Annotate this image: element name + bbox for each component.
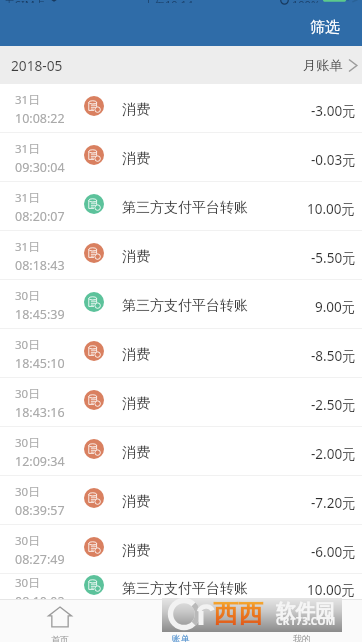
button[interactable]: 30日 <box>0 280 362 329</box>
staticText: 筛选 <box>310 18 340 37</box>
button[interactable]: Profile <box>241 599 362 642</box>
staticText: -6.00元 <box>311 543 356 561</box>
staticText: 10.00元 <box>307 581 356 599</box>
staticText: 31日 <box>15 190 40 206</box>
staticText: 消费 <box>122 395 150 413</box>
staticText: 30日 <box>15 386 40 402</box>
staticText: 30日 <box>15 435 40 451</box>
button[interactable]: 30日 <box>0 574 362 599</box>
staticText: 30日 <box>15 337 40 353</box>
staticText: 18:45:39 <box>15 306 65 323</box>
staticText: 消费 <box>122 346 150 364</box>
staticText: 31日 <box>15 141 40 157</box>
staticText: 西西 <box>213 598 263 629</box>
staticText: 上午10:14 <box>143 0 194 3</box>
staticText: 100% <box>292 0 321 3</box>
staticText: 我的 <box>293 633 311 642</box>
staticText: CR173.COM <box>276 614 336 628</box>
staticText: 30日 <box>15 575 40 591</box>
button[interactable]: 30日 <box>0 476 362 525</box>
staticText: 08:20:07 <box>15 208 65 225</box>
staticText: 31日 <box>15 239 40 255</box>
staticText: 08:27:49 <box>15 551 65 568</box>
button[interactable]: 2018-05 <box>0 46 362 84</box>
staticText: 18:45:10 <box>15 355 65 372</box>
staticText: 消费 <box>122 493 150 511</box>
staticText: 12:09:34 <box>15 453 65 470</box>
staticText: 9.00元 <box>315 298 356 316</box>
staticText: 首页 <box>51 634 69 642</box>
staticText: 消费 <box>122 248 150 266</box>
staticText: 30日 <box>15 484 40 500</box>
button[interactable]: 31日 <box>0 231 362 280</box>
staticText: 账单 <box>172 633 190 642</box>
button[interactable]: Home <box>0 599 120 642</box>
staticText: 31日 <box>15 92 40 108</box>
button[interactable]: 30日 <box>0 378 362 427</box>
staticText: -0.03元 <box>311 151 356 169</box>
staticText: 08:10:02 <box>15 593 65 600</box>
staticText: -7.20元 <box>311 494 356 512</box>
staticText: -2.00元 <box>311 445 356 463</box>
staticText: 10.00元 <box>307 200 356 218</box>
staticText: -2.50元 <box>311 396 356 414</box>
staticText: 消费 <box>122 150 150 168</box>
button[interactable]: 30日 <box>0 329 362 378</box>
staticText: -5.50元 <box>311 249 356 267</box>
staticText: -8.50元 <box>311 347 356 365</box>
staticText: 08:18:43 <box>15 257 65 274</box>
staticText: 第三方支付平台转账 <box>122 199 248 217</box>
staticText: 软件园 <box>276 599 335 624</box>
staticText: 消费 <box>122 444 150 462</box>
staticText: 2018-05 <box>11 56 63 75</box>
button[interactable]: 31日 <box>0 84 362 133</box>
staticText: 18:43:16 <box>15 404 65 421</box>
staticText: 30日 <box>15 288 40 304</box>
button[interactable]: 31日 <box>0 182 362 231</box>
button[interactable]: 30日 <box>0 525 362 574</box>
button[interactable]: 31日 <box>0 133 362 182</box>
staticText: 无SIM卡 <box>4 0 46 3</box>
button[interactable]: 30日 <box>0 427 362 476</box>
staticText: 第三方支付平台转账 <box>122 297 248 315</box>
staticText: 第三方支付平台转账 <box>122 580 248 598</box>
staticText: 消费 <box>122 542 150 560</box>
button[interactable]: Bills <box>120 599 241 642</box>
staticText: 09:30:04 <box>15 159 65 176</box>
button[interactable]: 筛选 <box>294 17 362 43</box>
staticText: 08:39:57 <box>15 502 65 519</box>
staticText: 10:08:22 <box>15 110 65 127</box>
staticText: 30日 <box>15 533 40 549</box>
staticText: -3.00元 <box>311 102 356 120</box>
staticText: 月账单 <box>303 57 343 74</box>
staticText: 消费 <box>122 101 150 119</box>
